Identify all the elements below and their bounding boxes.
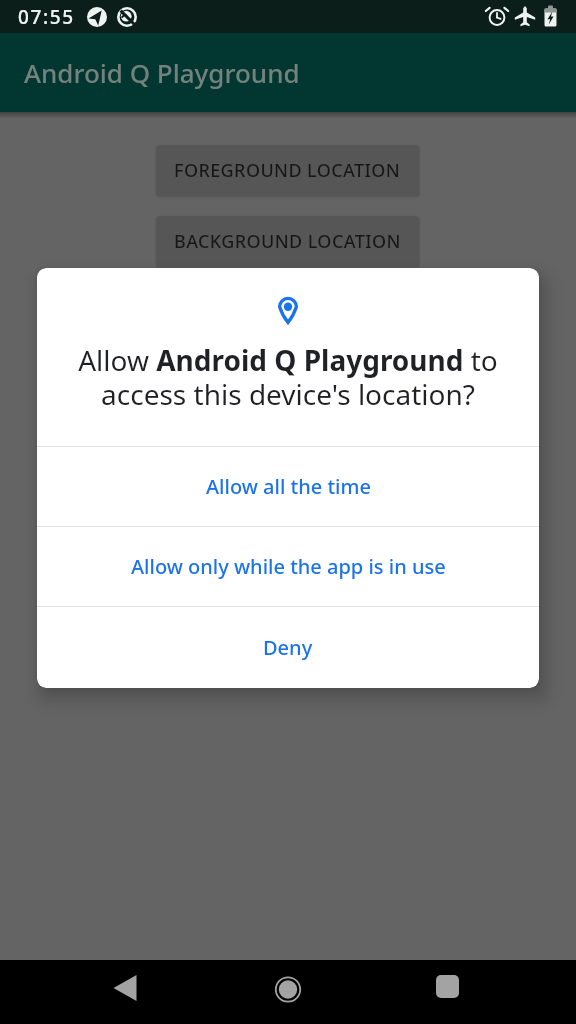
staticText: FOREGROUND LOCATION [174,158,401,183]
button[interactable] [105,970,149,1014]
staticText: Deny [263,634,313,661]
staticText: 07:55 [18,4,75,30]
button[interactable]: Allow only while the app is in use [37,527,539,606]
button[interactable]: Deny [37,607,539,688]
staticText: Android Q Playground [24,55,300,90]
button[interactable] [425,968,469,1012]
button[interactable]: Allow all the time [37,447,539,526]
button[interactable]: FOREGROUND LOCATION [156,145,419,196]
staticText: Allow all the time [206,473,371,500]
button[interactable]: BACKGROUND LOCATION [156,216,419,267]
staticText: BACKGROUND LOCATION [174,229,401,254]
staticText: Allow Android Q Playground to access thi… [37,341,539,413]
button[interactable] [266,968,310,1012]
staticText: Allow only while the app is in use [131,553,446,580]
